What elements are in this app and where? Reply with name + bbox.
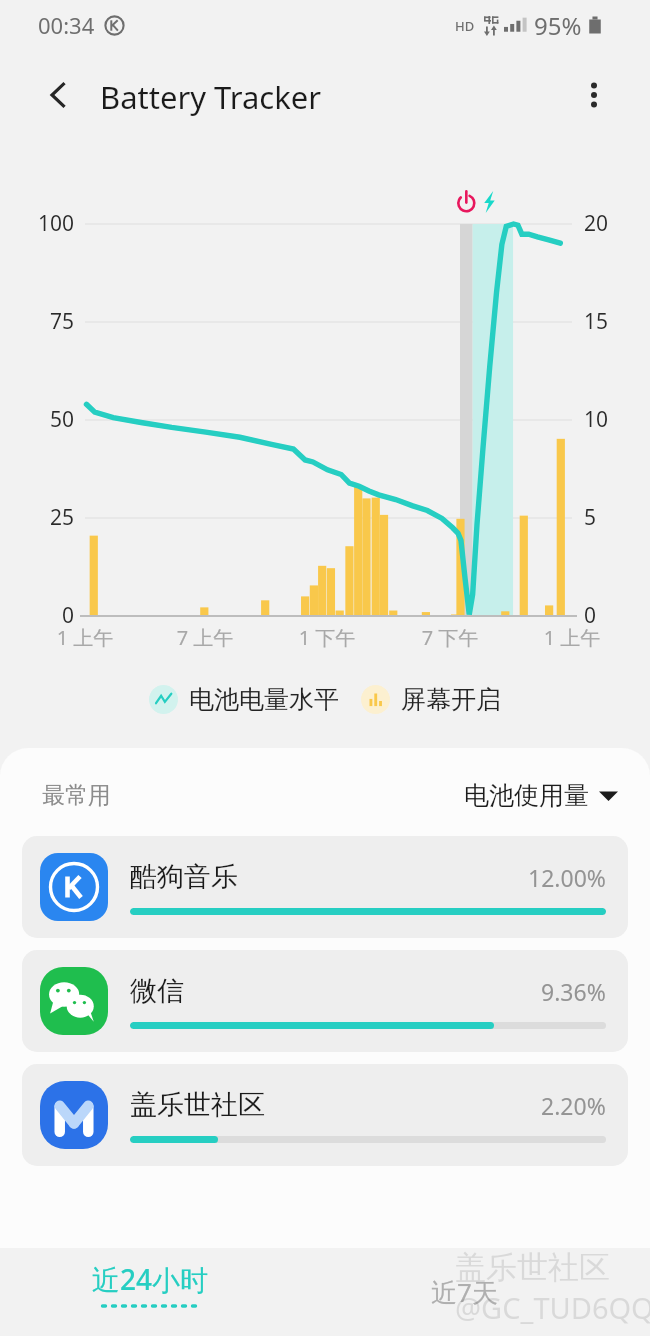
staticText: 电池电量水平 — [189, 684, 339, 715]
staticText: 2.20% — [541, 1090, 606, 1121]
staticText: 25 — [18, 503, 74, 532]
staticText: Battery Tracker — [100, 76, 322, 118]
staticText: 12.00% — [528, 862, 606, 893]
staticText: 0 — [18, 601, 74, 630]
staticText: 7 下午 — [402, 624, 498, 651]
button[interactable]: 微信 — [22, 950, 628, 1052]
staticText: 95% — [534, 9, 582, 42]
button[interactable]: 盖乐世社区 — [22, 1064, 628, 1166]
button[interactable]: More options — [566, 67, 622, 123]
staticText: 0 — [584, 601, 628, 630]
staticText: 20 — [584, 209, 628, 238]
staticText: 1 上午 — [524, 624, 620, 651]
staticText: 50 — [18, 405, 74, 434]
staticText: 近7天 — [431, 1274, 498, 1310]
button[interactable]: 电池使用量 — [460, 776, 622, 815]
button[interactable]: Back — [30, 67, 86, 123]
staticText: 屏幕开启 — [401, 684, 501, 715]
staticText: 盖乐世社区 — [455, 1248, 610, 1287]
staticText: 100 — [18, 209, 74, 238]
staticText: 00:34 — [38, 10, 95, 40]
staticText: 盖乐世社区 — [130, 1088, 265, 1122]
button[interactable]: 酷狗音乐 — [22, 836, 628, 938]
staticText: 最常用 — [42, 781, 111, 810]
staticText: 7 上午 — [157, 624, 253, 651]
button[interactable]: 近24小时 — [90, 1258, 211, 1311]
staticText: 1 上午 — [37, 624, 133, 651]
button[interactable]: 近7天 — [425, 1268, 504, 1316]
staticText: 10 — [584, 405, 628, 434]
staticText: 75 — [18, 307, 74, 336]
staticText: 9.36% — [541, 976, 606, 1007]
staticText: 电池使用量 — [464, 780, 589, 811]
staticText: 微信 — [130, 974, 184, 1008]
staticText: 15 — [584, 307, 628, 336]
staticText: 酷狗音乐 — [130, 860, 238, 894]
staticText: @GC_TUD6QQV — [455, 1288, 650, 1327]
staticText: HD — [455, 17, 475, 35]
staticText: 1 下午 — [279, 624, 375, 651]
staticText: 近24小时 — [92, 1260, 209, 1298]
staticText: 5 — [584, 503, 628, 532]
